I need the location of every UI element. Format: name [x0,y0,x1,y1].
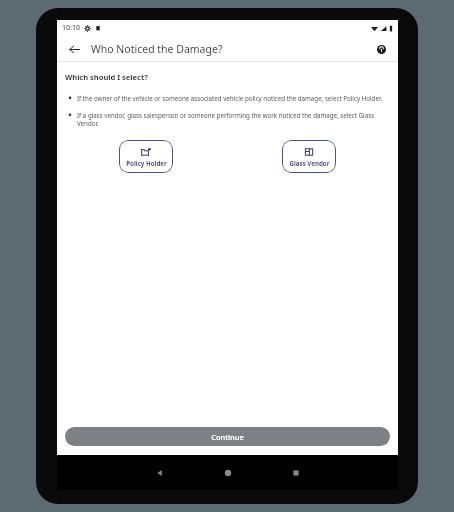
button[interactable]: Back [65,40,83,58]
staticText: Who Noticed the Damage? [91,42,223,56]
staticText: 10:10 [62,23,80,33]
button[interactable]: Policy Holder [119,140,173,173]
staticText: If a glass vendor, glass salesperson or … [77,111,392,127]
button[interactable]: Continue [65,427,390,446]
button[interactable]: Glass Vendor [282,140,336,173]
staticText: Policy Holder [126,159,167,167]
button[interactable]: Home [215,460,241,486]
button[interactable]: Help [372,40,390,58]
staticText: Which should I select? [65,72,148,82]
button[interactable]: Recent apps [283,460,309,486]
staticText: Glass Vendor [289,159,330,167]
staticText: If the owner of the vehicle or someone a… [77,94,383,102]
staticText: Continue [211,432,244,442]
button[interactable]: Back [147,460,173,486]
